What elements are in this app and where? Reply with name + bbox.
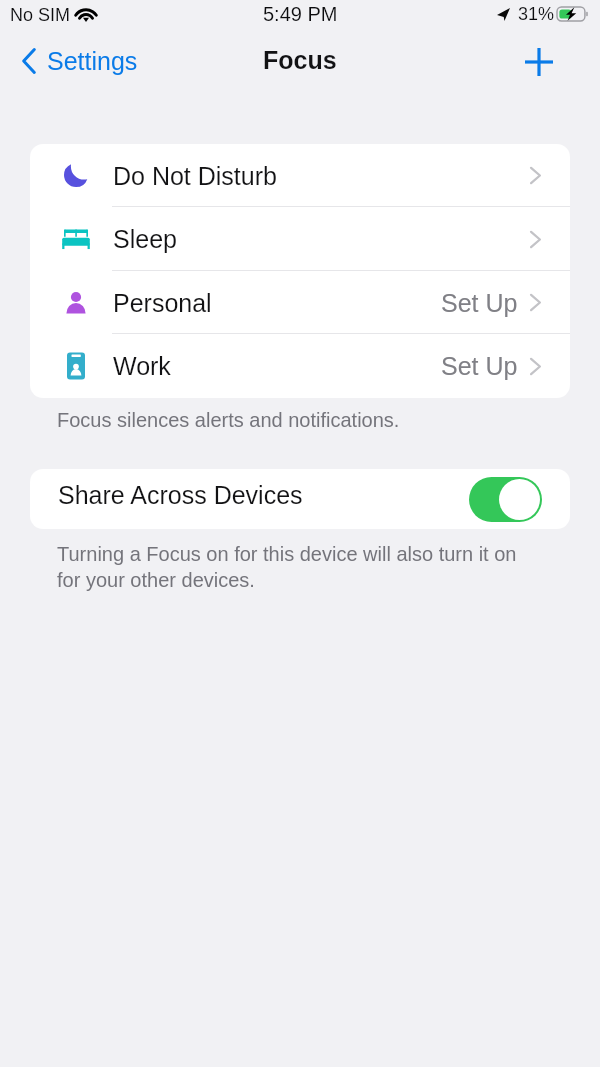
button[interactable]: Work bbox=[30, 334, 570, 398]
staticText: Turning a Focus on for this device will … bbox=[57, 543, 535, 591]
staticText: Focus silences alerts and notifications. bbox=[57, 409, 400, 431]
button[interactable]: Settings bbox=[12, 41, 148, 81]
staticText: 31% bbox=[518, 4, 555, 24]
staticText: No SIM bbox=[10, 5, 71, 25]
staticText: Sleep bbox=[113, 225, 177, 253]
staticText: Set Up bbox=[441, 289, 518, 317]
staticText: Work bbox=[113, 352, 171, 380]
staticText: Personal bbox=[113, 289, 212, 317]
staticText: Share Across Devices bbox=[58, 481, 303, 509]
staticText: Do Not Disturb bbox=[113, 162, 277, 190]
button[interactable]: Share Across Devices bbox=[30, 469, 570, 529]
staticText: Settings bbox=[47, 47, 138, 75]
staticText: Set Up bbox=[441, 352, 518, 380]
button[interactable]: Personal bbox=[30, 271, 570, 334]
other: Share Across Devices toggle bbox=[469, 477, 542, 522]
button[interactable]: Sleep bbox=[30, 207, 570, 271]
staticText: Focus bbox=[263, 46, 337, 74]
button[interactable]: Do Not Disturb bbox=[30, 144, 570, 207]
button[interactable]: Add Focus bbox=[515, 38, 563, 86]
staticText: 5:49 PM bbox=[263, 3, 338, 25]
